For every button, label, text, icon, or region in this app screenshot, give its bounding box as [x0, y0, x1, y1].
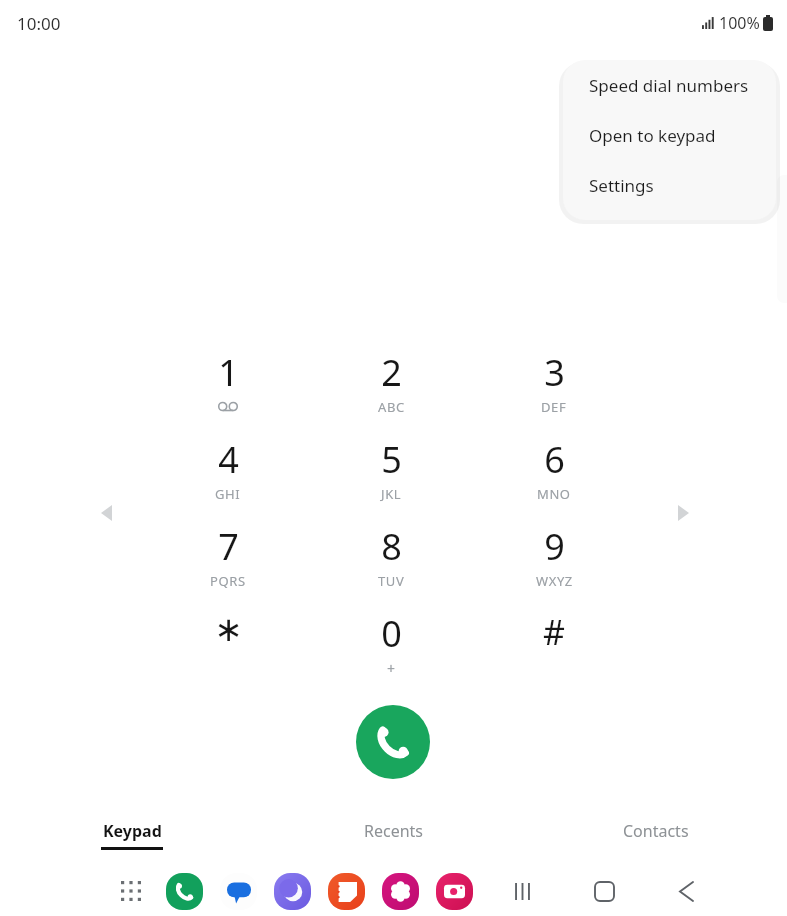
- staticText: Open to keypad: [589, 124, 716, 147]
- staticText: 10:00: [17, 12, 61, 35]
- staticText: 3: [544, 348, 565, 397]
- staticText: JKL: [381, 485, 402, 503]
- staticText: 1: [218, 348, 239, 397]
- staticText: GHI: [215, 485, 241, 503]
- button[interactable]: 6: [488, 435, 620, 517]
- button[interactable]: Gallery: [381, 872, 419, 910]
- staticText: Settings: [589, 174, 654, 197]
- staticText: PQRS: [210, 572, 246, 590]
- button[interactable]: 2: [325, 348, 457, 430]
- staticText: +: [387, 659, 396, 678]
- button[interactable]: Camera: [435, 872, 473, 910]
- button[interactable]: Call: [356, 705, 430, 779]
- staticText: Contacts: [623, 820, 689, 842]
- staticText: Recents: [364, 820, 424, 842]
- button[interactable]: Back: [659, 872, 713, 910]
- staticText: Speed dial numbers: [589, 74, 749, 97]
- button[interactable]: Home: [577, 872, 631, 910]
- staticText: 9: [544, 522, 565, 571]
- staticText: 7: [218, 522, 239, 571]
- button[interactable]: Settings: [563, 160, 776, 210]
- staticText: MNO: [537, 485, 571, 503]
- button[interactable]: 9: [488, 522, 620, 604]
- staticText: 6: [544, 435, 565, 484]
- staticText: WXYZ: [536, 572, 573, 590]
- staticText: 8: [381, 522, 402, 571]
- staticText: TUV: [378, 572, 405, 590]
- staticText: DEF: [541, 398, 567, 416]
- button[interactable]: 4: [162, 435, 294, 517]
- staticText: 4: [218, 435, 239, 484]
- button[interactable]: Previous page: [93, 500, 119, 526]
- button[interactable]: Keypad: [0, 810, 263, 856]
- staticText: 0: [381, 609, 402, 658]
- button[interactable]: Speed dial numbers: [563, 60, 776, 110]
- button[interactable]: Apps: [112, 872, 150, 910]
- staticText: #: [543, 609, 565, 655]
- button[interactable]: Next page: [670, 500, 696, 526]
- button[interactable]: 5: [325, 435, 457, 517]
- button[interactable]: Recents: [495, 872, 549, 910]
- button[interactable]: 1: [162, 348, 294, 430]
- button[interactable]: 7: [162, 522, 294, 604]
- staticText: ABC: [378, 398, 405, 416]
- button[interactable]: Notes: [327, 872, 365, 910]
- staticText: 100%: [719, 12, 760, 34]
- button[interactable]: 8: [325, 522, 457, 604]
- button[interactable]: 0: [325, 609, 457, 691]
- button[interactable]: ∗: [162, 609, 294, 691]
- staticText: 2: [381, 348, 402, 397]
- button[interactable]: 3: [488, 348, 620, 430]
- button[interactable]: Open to keypad: [563, 110, 776, 160]
- button[interactable]: Phone: [165, 872, 203, 910]
- staticText: Keypad: [103, 820, 162, 842]
- staticText: ∗: [214, 609, 243, 649]
- staticText: 5: [381, 435, 402, 484]
- button[interactable]: #: [488, 609, 620, 691]
- button[interactable]: Recents: [263, 810, 525, 856]
- button[interactable]: Contacts: [525, 810, 787, 856]
- button[interactable]: Internet: [273, 872, 311, 910]
- button[interactable]: Edge panel: [777, 175, 787, 303]
- button[interactable]: Messages: [219, 872, 257, 910]
